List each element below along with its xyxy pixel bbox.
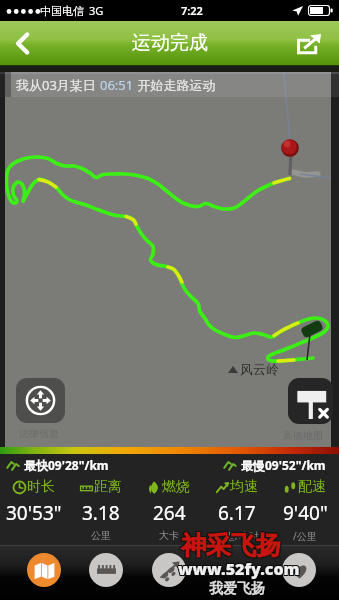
staticText: /公里: [293, 529, 317, 543]
staticText: 9'40": [283, 500, 328, 526]
staticText: www.52fy.com: [179, 559, 301, 581]
staticText: 神采飞扬: [180, 531, 280, 562]
staticText: 06:51: [100, 76, 134, 94]
staticText: 6.17: [218, 500, 256, 526]
button[interactable]: 燃烧: [135, 476, 203, 545]
staticText: www.52fy.com: [177, 557, 299, 579]
staticText: 风云岭: [240, 361, 279, 377]
button[interactable]: 均速: [203, 476, 271, 545]
button[interactable]: 距离: [67, 476, 135, 545]
staticText: 7:22: [181, 3, 203, 18]
staticText: www.52fy.com: [179, 558, 301, 580]
button[interactable]: Map: [27, 553, 61, 587]
staticText: www.52fy.com: [178, 559, 300, 581]
staticText: 神采飞扬: [181, 531, 281, 562]
button[interactable]: Records: [89, 553, 123, 587]
staticText: 最慢09'52"/km: [241, 457, 326, 473]
staticText: 距离: [94, 478, 122, 496]
staticText: 神采飞扬: [182, 530, 282, 561]
staticText: 公里: [91, 529, 111, 542]
staticText: 高德地图: [283, 429, 323, 442]
staticText: 开始走路运动: [134, 76, 216, 94]
staticText: 配速: [298, 478, 326, 496]
staticText: 264: [153, 500, 186, 526]
staticText: www.52fy.com: [178, 558, 300, 580]
staticText: 中国电信: [40, 4, 84, 18]
staticText: 神采飞扬: [182, 529, 282, 560]
staticText: 最快09'28"/km: [24, 457, 109, 473]
staticText: 大卡: [159, 529, 179, 542]
button[interactable]: 配速: [271, 476, 339, 545]
staticText: 3G: [89, 3, 104, 18]
button[interactable]: Share: [291, 21, 326, 66]
staticText: 公里/小时: [215, 529, 259, 543]
staticText: 时长: [27, 478, 55, 496]
button[interactable]: Back: [0, 21, 44, 66]
staticText: 神采飞扬: [181, 530, 281, 561]
staticText: 运动完成: [132, 31, 208, 55]
staticText: 燃烧: [162, 478, 190, 496]
staticText: 神采飞扬: [180, 529, 280, 560]
button[interactable]: Hide map: [288, 378, 333, 424]
staticText: www.52fy.com: [177, 559, 299, 581]
staticText: 我爱飞扬: [209, 580, 265, 598]
staticText: 神采飞扬: [182, 531, 282, 562]
staticText: www.52fy.com: [179, 557, 301, 579]
staticText: 神采飞扬: [180, 530, 280, 561]
staticText: 3.18: [82, 500, 120, 526]
staticText: 神采飞扬: [181, 529, 281, 560]
staticText: www.52fy.com: [178, 557, 300, 579]
staticText: www.52fy.com: [177, 558, 299, 580]
button[interactable]: Activity: [152, 553, 186, 587]
staticText: 30'53": [6, 500, 62, 526]
staticText: 法律信息: [19, 427, 59, 440]
button[interactable]: Legal info: [16, 378, 65, 423]
staticText: 均速: [230, 478, 258, 496]
button[interactable]: 时长: [0, 476, 67, 545]
staticText: 我从03月某日: [16, 76, 100, 94]
button[interactable]: Favorites: [282, 553, 316, 587]
